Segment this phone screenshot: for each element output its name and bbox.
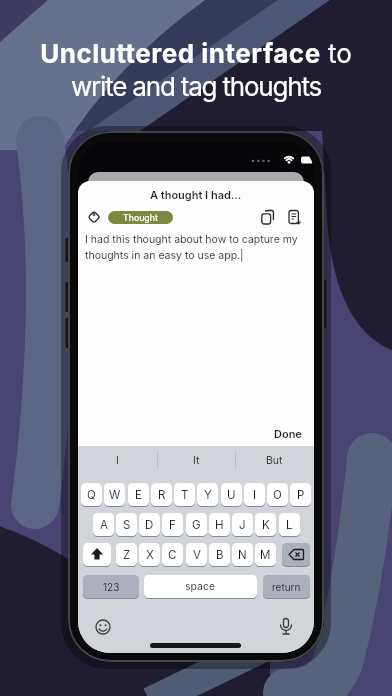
button[interactable]: V (186, 543, 207, 566)
staticText: I had this thought about how to capture … (85, 233, 298, 261)
staticText: D (145, 518, 154, 532)
button[interactable]: C (162, 543, 183, 566)
staticText: X (146, 548, 154, 562)
staticText: B (216, 548, 224, 562)
staticText: U (227, 488, 236, 502)
staticText: But (266, 454, 283, 467)
staticText: Done (274, 427, 302, 440)
button[interactable]: Done (78, 423, 314, 443)
button[interactable]: X (139, 543, 160, 566)
staticText: R (158, 488, 166, 502)
staticText: P (297, 488, 305, 502)
button[interactable] (83, 543, 111, 566)
staticText: I (253, 488, 257, 502)
button[interactable]: G (186, 513, 207, 536)
button[interactable] (95, 619, 111, 635)
button[interactable]: Thought (108, 211, 173, 224)
staticText: Q (87, 488, 96, 502)
button[interactable]: It (157, 446, 235, 475)
button[interactable]: S (116, 513, 137, 536)
button[interactable]: Q (81, 483, 102, 506)
button[interactable]: I (78, 446, 156, 475)
staticText: E (135, 488, 142, 502)
staticText: C (168, 548, 177, 562)
staticText: N (238, 548, 247, 562)
staticText: J (239, 518, 246, 532)
button[interactable] (278, 617, 294, 637)
staticText: L (286, 518, 293, 532)
button[interactable]: Z (116, 543, 137, 566)
button[interactable] (286, 209, 302, 225)
button[interactable]: Y (197, 483, 218, 506)
button[interactable]: F (162, 513, 183, 536)
staticText: K (262, 518, 270, 532)
button[interactable]: M (255, 543, 276, 566)
staticText: It (193, 454, 200, 467)
button[interactable]: H (209, 513, 230, 536)
staticText: 123 (103, 581, 120, 593)
staticText: Uncluttered interface to (0, 38, 392, 69)
button[interactable]: W (104, 483, 125, 506)
button[interactable]: But (235, 446, 313, 475)
button[interactable]: J (232, 513, 253, 536)
button[interactable] (282, 543, 310, 566)
button[interactable]: N (232, 543, 253, 566)
staticText: G (192, 518, 201, 532)
staticText: W (109, 488, 121, 502)
button[interactable]: U (221, 483, 242, 506)
staticText: return (272, 581, 301, 593)
staticText: I (116, 454, 119, 467)
staticText: Y (204, 488, 212, 502)
button[interactable]: D (139, 513, 160, 536)
button[interactable]: return (263, 575, 310, 598)
staticText: Thought (123, 212, 158, 223)
button[interactable]: I (244, 483, 265, 506)
staticText: T (181, 488, 189, 502)
staticText: V (193, 548, 201, 562)
staticText: write and tag thoughts (0, 71, 392, 102)
staticText: F (169, 518, 176, 532)
button[interactable]: P (290, 483, 311, 506)
staticText: O (273, 488, 282, 502)
button[interactable]: space (144, 575, 257, 598)
button[interactable]: A (93, 513, 114, 536)
button[interactable]: B (209, 543, 230, 566)
staticText: H (215, 518, 224, 532)
button[interactable]: R (151, 483, 172, 506)
button[interactable]: 123 (83, 575, 139, 598)
button[interactable]: E (128, 483, 149, 506)
button[interactable]: K (255, 513, 276, 536)
button[interactable]: L (279, 513, 300, 536)
staticText: A thought I had... (150, 188, 242, 201)
button[interactable]: O (267, 483, 288, 506)
button[interactable]: T (174, 483, 195, 506)
staticText: A (100, 518, 108, 532)
button[interactable] (86, 209, 102, 225)
staticText: M (260, 548, 271, 562)
staticText: Z (123, 548, 131, 562)
staticText: S (123, 518, 131, 532)
button[interactable] (260, 209, 276, 225)
staticText: space (185, 580, 216, 593)
